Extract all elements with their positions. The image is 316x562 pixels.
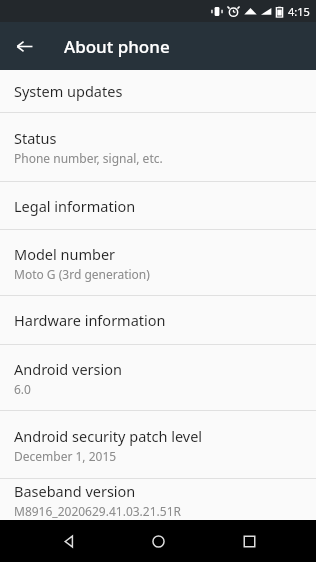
button[interactable]: Android version xyxy=(0,345,316,410)
staticText: December 1, 2015 xyxy=(14,448,117,464)
button[interactable]: Hardware information xyxy=(0,296,316,344)
staticText: Moto G (3rd generation) xyxy=(14,266,150,282)
staticText: Status xyxy=(14,128,57,148)
staticText: M8916_2020629.41.03.21.51R xyxy=(14,503,181,519)
staticText: Hardware information xyxy=(14,310,166,330)
button[interactable]: System updates xyxy=(0,70,316,112)
button[interactable]: Status xyxy=(0,113,316,181)
staticText: Android security patch level xyxy=(14,426,203,446)
staticText: About phone xyxy=(64,35,170,58)
button[interactable]: Back xyxy=(6,28,42,64)
staticText: 6.0 xyxy=(14,381,31,397)
button[interactable]: Baseband version xyxy=(0,479,316,520)
staticText: Model number xyxy=(14,244,116,264)
button[interactable]: Recent apps xyxy=(226,520,272,562)
button[interactable]: Legal information xyxy=(0,182,316,229)
staticText: Phone number, signal, etc. xyxy=(14,150,163,166)
staticText: Android version xyxy=(14,359,122,379)
staticText: Legal information xyxy=(14,196,136,216)
button[interactable]: Android security patch level xyxy=(0,411,316,478)
staticText: Baseband version xyxy=(14,481,136,501)
button[interactable]: Home xyxy=(135,520,181,562)
button[interactable]: Back xyxy=(45,520,91,562)
button[interactable]: Model number xyxy=(0,230,316,295)
staticText: 4:15 xyxy=(288,4,310,19)
staticText: System updates xyxy=(14,81,123,101)
